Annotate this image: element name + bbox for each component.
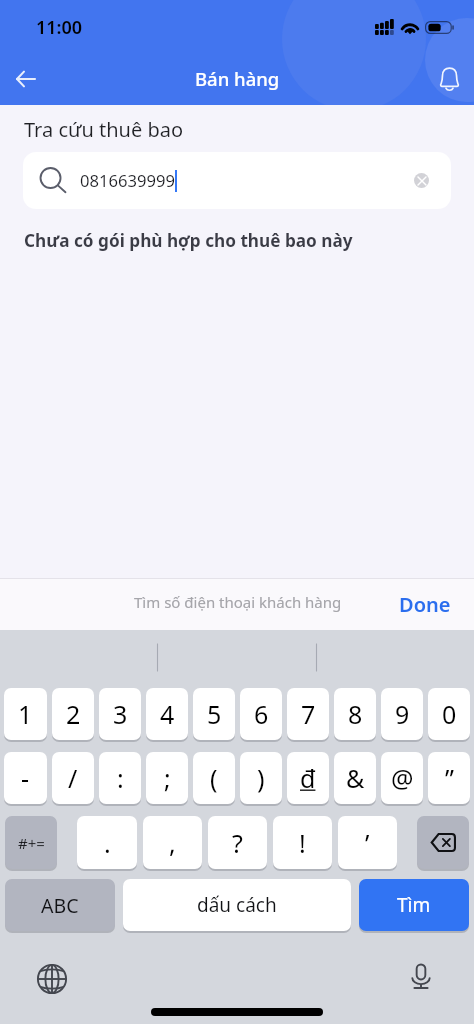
button[interactable]: /	[52, 752, 94, 804]
staticText: .	[104, 826, 111, 860]
button[interactable]: (	[193, 752, 235, 804]
button[interactable]: Notifications	[425, 55, 473, 103]
staticText: &	[346, 761, 365, 795]
button[interactable]: Done	[399, 591, 451, 618]
button[interactable]: 6	[240, 688, 282, 740]
button[interactable]: Tìm	[359, 879, 469, 931]
staticText: ;	[164, 761, 171, 795]
button[interactable]: 3	[99, 688, 141, 740]
button[interactable]: 0	[428, 688, 470, 740]
button[interactable]: 5	[193, 688, 235, 740]
button[interactable]: Voice input	[399, 954, 443, 998]
staticText: 6	[254, 697, 269, 731]
staticText: 3	[113, 697, 128, 731]
button[interactable]: 4	[146, 688, 188, 740]
button[interactable]: 8	[334, 688, 376, 740]
staticText: :	[117, 761, 124, 795]
staticText: )	[257, 761, 265, 795]
staticText: 2	[66, 697, 81, 731]
staticText: ABC	[41, 892, 79, 919]
staticText: Tìm	[397, 892, 431, 918]
button[interactable]: ’	[338, 816, 397, 869]
button[interactable]: 0816639999	[23, 152, 451, 209]
staticText: Tra cứu thuê bao	[24, 116, 184, 143]
button[interactable]	[417, 816, 469, 869]
staticText: Chưa có gói phù hợp cho thuê bao này	[24, 229, 353, 252]
staticText: 0816639999	[80, 169, 175, 192]
staticText: dấu cách	[197, 892, 277, 918]
other: Backspace	[417, 816, 469, 869]
staticText: 9	[395, 697, 410, 731]
button[interactable]: ;	[146, 752, 188, 804]
staticText: 8	[348, 697, 363, 731]
staticText: 11:00	[36, 15, 83, 40]
button[interactable]: Clear	[414, 173, 429, 188]
button[interactable]: đ	[287, 752, 329, 804]
button[interactable]: .	[77, 816, 137, 869]
button[interactable]: Change keyboard	[30, 957, 74, 1001]
staticText: 5	[207, 697, 222, 731]
button[interactable]: ,	[143, 816, 202, 869]
staticText: ,	[169, 826, 176, 860]
staticText: #+=	[18, 833, 45, 853]
button[interactable]: ”	[428, 752, 470, 804]
button[interactable]: :	[99, 752, 141, 804]
staticText: /	[68, 761, 78, 795]
button[interactable]: #+=	[5, 816, 57, 869]
button[interactable]: 1	[4, 688, 47, 740]
staticText: Done	[399, 591, 451, 618]
staticText: (	[210, 761, 218, 795]
button[interactable]: ABC	[5, 879, 115, 931]
button[interactable]: 9	[381, 688, 423, 740]
button[interactable]: ?	[208, 816, 267, 869]
staticText: 7	[301, 697, 316, 731]
button[interactable]: @	[381, 752, 423, 804]
button[interactable]: dấu cách	[123, 879, 351, 931]
staticText: 4	[160, 697, 175, 731]
staticText: Tìm số điện thoại khách hàng	[134, 592, 342, 612]
button[interactable]: !	[273, 816, 332, 869]
staticText: ’	[365, 826, 370, 860]
button[interactable]: 7	[287, 688, 329, 740]
staticText: -	[21, 761, 30, 795]
staticText: @	[391, 761, 414, 795]
button[interactable]: Back	[1, 55, 49, 103]
staticText: ”	[445, 761, 454, 795]
staticText: 0	[442, 697, 457, 731]
staticText: ?	[232, 826, 243, 860]
staticText: !	[299, 826, 306, 860]
button[interactable]: 2	[52, 688, 94, 740]
button[interactable]: -	[4, 752, 47, 804]
button[interactable]: )	[240, 752, 282, 804]
staticText: Bán hàng	[195, 66, 280, 91]
button[interactable]: &	[334, 752, 376, 804]
staticText: đ	[300, 761, 316, 795]
staticText: 1	[18, 697, 33, 731]
